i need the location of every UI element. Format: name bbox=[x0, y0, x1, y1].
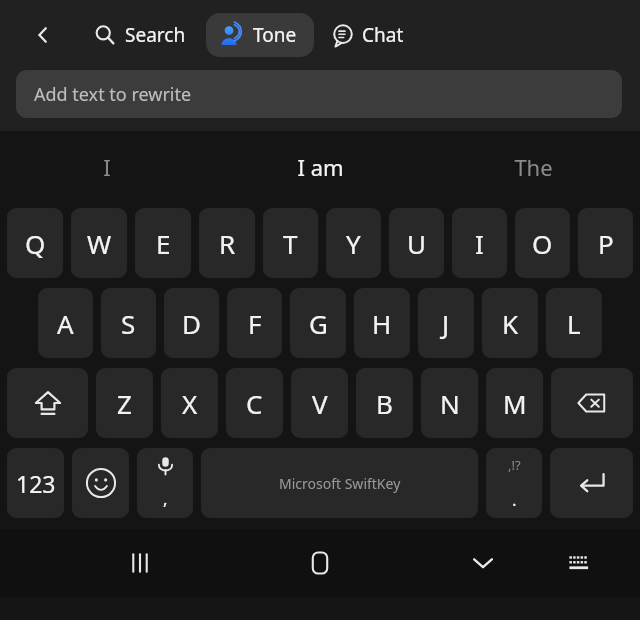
staticText: M bbox=[503, 386, 527, 421]
button[interactable]: Shift bbox=[7, 368, 88, 438]
button[interactable]: I bbox=[0, 131, 214, 203]
button[interactable]: O bbox=[515, 208, 570, 278]
staticText: Tone bbox=[253, 22, 297, 48]
staticText: W bbox=[87, 226, 112, 261]
staticText: Search bbox=[125, 22, 186, 48]
staticText: O bbox=[532, 226, 553, 261]
button[interactable]: Tone bbox=[206, 13, 314, 57]
staticText: L bbox=[567, 306, 581, 341]
staticText: N bbox=[440, 386, 460, 421]
staticText: B bbox=[376, 386, 393, 421]
staticText: , bbox=[163, 487, 168, 510]
staticText: I am bbox=[297, 152, 344, 182]
button[interactable]: Emoji bbox=[72, 448, 129, 518]
staticText: S bbox=[121, 306, 136, 341]
staticText: Q bbox=[25, 226, 46, 261]
button[interactable]: Y bbox=[326, 208, 381, 278]
button[interactable]: ,!? bbox=[486, 448, 542, 518]
staticText: . bbox=[512, 488, 517, 511]
button[interactable]: A bbox=[38, 288, 93, 358]
staticText: F bbox=[248, 306, 262, 341]
button[interactable]: Search bbox=[86, 14, 194, 56]
staticText: J bbox=[442, 306, 450, 341]
button[interactable]: Microsoft SwiftKey bbox=[201, 448, 478, 518]
button[interactable]: Back bbox=[26, 18, 60, 52]
staticText: I bbox=[475, 226, 484, 261]
button[interactable]: T bbox=[263, 208, 318, 278]
button[interactable]: Z bbox=[96, 368, 153, 438]
staticText: ,!? bbox=[508, 456, 521, 474]
button[interactable]: 123 bbox=[7, 448, 64, 518]
button[interactable]: B bbox=[356, 368, 413, 438]
button[interactable]: D bbox=[164, 288, 219, 358]
staticText: G bbox=[309, 306, 328, 341]
staticText: E bbox=[156, 226, 171, 261]
staticText: Z bbox=[117, 386, 132, 421]
staticText: K bbox=[502, 306, 519, 341]
staticText: Chat bbox=[362, 22, 404, 48]
button[interactable]: Enter bbox=[550, 448, 633, 518]
button[interactable]: K bbox=[482, 288, 538, 358]
staticText: U bbox=[407, 226, 427, 261]
button[interactable]: Add text to rewrite bbox=[16, 70, 622, 118]
staticText: C bbox=[246, 386, 263, 421]
staticText: X bbox=[182, 386, 198, 421]
button[interactable]: L bbox=[546, 288, 602, 358]
staticText: P bbox=[598, 226, 614, 261]
button[interactable]: P bbox=[578, 208, 633, 278]
staticText: T bbox=[283, 226, 298, 261]
button[interactable]: Recent apps bbox=[116, 539, 164, 587]
staticText: The bbox=[514, 152, 553, 182]
staticText: 123 bbox=[16, 468, 56, 499]
staticText: Add text to rewrite bbox=[34, 82, 192, 107]
staticText: I bbox=[103, 152, 111, 182]
button[interactable]: Hide keyboard bbox=[459, 539, 507, 587]
staticText: D bbox=[182, 306, 201, 341]
staticText: A bbox=[57, 306, 74, 341]
button[interactable]: W bbox=[71, 208, 127, 278]
button[interactable]: V bbox=[291, 368, 348, 438]
staticText: H bbox=[372, 306, 392, 341]
button[interactable]: U bbox=[389, 208, 444, 278]
button[interactable]: Chat bbox=[324, 14, 412, 56]
button[interactable]: Voice input bbox=[137, 448, 193, 518]
button[interactable]: C bbox=[226, 368, 283, 438]
button[interactable]: M bbox=[486, 368, 543, 438]
staticText: V bbox=[312, 386, 328, 421]
button[interactable]: The bbox=[427, 131, 640, 203]
button[interactable]: N bbox=[421, 368, 478, 438]
button[interactable]: Home bbox=[296, 539, 344, 587]
button[interactable]: E bbox=[135, 208, 191, 278]
button[interactable]: X bbox=[161, 368, 218, 438]
button[interactable]: I bbox=[452, 208, 507, 278]
staticText: R bbox=[219, 226, 236, 261]
staticText: Y bbox=[346, 226, 361, 261]
staticText: Microsoft SwiftKey bbox=[279, 474, 401, 493]
button[interactable]: J bbox=[418, 288, 474, 358]
button[interactable]: R bbox=[199, 208, 255, 278]
button[interactable]: S bbox=[101, 288, 156, 358]
button[interactable]: Backspace bbox=[551, 368, 633, 438]
button[interactable]: H bbox=[354, 288, 410, 358]
button[interactable]: Q bbox=[7, 208, 63, 278]
button[interactable]: G bbox=[290, 288, 346, 358]
button[interactable]: I am bbox=[214, 131, 427, 203]
button[interactable]: F bbox=[227, 288, 282, 358]
button[interactable]: Change keyboard bbox=[555, 539, 603, 587]
